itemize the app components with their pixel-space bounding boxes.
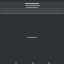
button[interactable]: Profile [47, 61, 50, 64]
button[interactable]: Home [14, 61, 17, 64]
button[interactable]: Search [31, 61, 34, 64]
